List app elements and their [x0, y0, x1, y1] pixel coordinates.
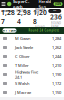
staticText: Round 24 Complete	[28, 29, 59, 32]
button[interactable]: MY TEAM	[2, 28, 16, 33]
button[interactable]: S Walsh	[0, 79, 64, 88]
button[interactable]: Menu	[0, 0, 7, 8]
staticText: Herald Sun	[38, 0, 51, 9]
staticText: ROUND SCORE	[35, 26, 45, 33]
staticText: M Gawn	[15, 36, 30, 41]
button[interactable]: Round 24	[34, 9, 46, 13]
staticText: 1,172	[52, 81, 61, 86]
staticText: Jack Steele	[15, 45, 33, 50]
staticText: TOTAL POINTS	[19, 26, 28, 33]
staticText: J Macrae	[15, 90, 31, 95]
staticText: 1,150	[52, 90, 61, 95]
staticText: ROUND RANK	[51, 21, 61, 28]
staticText: 236	[50, 12, 62, 21]
button[interactable]: ROUND	[16, 9, 26, 13]
button[interactable]: Highway Five 24.1	[0, 70, 64, 79]
staticText: Highway Five 24.1	[15, 69, 38, 80]
staticText: OVERALL	[1, 9, 12, 13]
staticText: 1,190	[52, 72, 61, 77]
staticText: JOIN	[55, 2, 61, 6]
staticText: ROUND	[16, 9, 26, 13]
staticText: •••	[53, 9, 56, 13]
button[interactable]: •••	[48, 9, 61, 13]
button[interactable]: Jack Steele	[0, 43, 64, 52]
button[interactable]: J Macrae	[0, 88, 64, 97]
button[interactable]: OVERALL	[1, 9, 12, 13]
staticText: 2,984	[17, 8, 31, 26]
staticText: SuperCoach	[13, 0, 29, 9]
button[interactable]: M Gawn	[0, 34, 64, 43]
button[interactable]: JOIN	[53, 2, 62, 6]
staticText: 1,287	[1, 8, 15, 26]
button[interactable]: C Oliver	[0, 52, 64, 61]
staticText: 1,244	[52, 54, 61, 59]
staticText: 1,262	[52, 45, 61, 50]
staticText: Round 24	[35, 7, 45, 15]
staticText: 1,210	[52, 63, 61, 68]
staticText: T Miller	[15, 63, 29, 68]
button[interactable]: T Miller	[0, 61, 64, 70]
staticText: OVERALL RANK	[2, 26, 13, 33]
staticText: C Oliver	[15, 54, 30, 59]
staticText: 1,284	[52, 36, 61, 41]
staticText: S Walsh	[15, 81, 29, 86]
staticText: MY TEAM	[2, 29, 16, 32]
staticText: 1,208	[33, 8, 47, 26]
